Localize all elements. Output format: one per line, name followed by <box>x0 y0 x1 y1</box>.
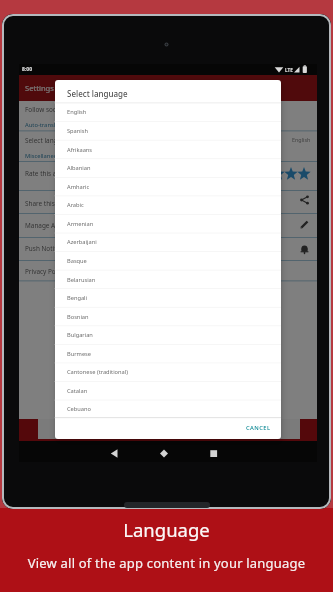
staticText: Afrikaans <box>67 146 93 154</box>
staticText: English <box>292 136 311 143</box>
staticText: Language <box>0 517 333 542</box>
staticText: Push Notifications <box>25 244 80 253</box>
staticText: Share this app <box>25 199 68 208</box>
staticText: Bosnian <box>67 313 89 321</box>
staticText: Cebuano <box>67 405 91 413</box>
staticText: CANCEL <box>246 424 271 432</box>
staticText: View all of the app content in your lang… <box>0 554 333 572</box>
staticText: Bulgarian <box>67 331 93 339</box>
staticText: Burmese <box>67 350 92 358</box>
staticText: 8:00 <box>22 66 32 73</box>
staticText: Amharic <box>67 183 90 191</box>
staticText: Spanish <box>67 127 89 135</box>
staticText: LTE <box>285 67 293 73</box>
staticText: Settings <box>25 83 54 93</box>
staticText: Armenian <box>67 220 94 228</box>
staticText: Cantonese (traditional) <box>67 368 128 376</box>
staticText: Albanian <box>67 164 91 172</box>
staticText: Select language <box>25 136 73 145</box>
staticText: Arabic <box>67 201 84 209</box>
staticText: Catalan <box>67 387 88 395</box>
staticText: Rate this app <box>25 169 65 178</box>
staticText: Bengali <box>67 294 88 302</box>
staticText: Privacy Policy <box>25 267 66 276</box>
staticText: English <box>67 108 87 116</box>
staticText: Manage Ad Consent <box>25 221 86 230</box>
staticText: Miscellaneous <box>25 152 64 160</box>
staticText: Auto-translate <box>25 121 64 129</box>
staticText: Belarusian <box>67 276 96 284</box>
staticText: Follow social media <box>25 105 84 114</box>
staticText: Select language <box>67 88 128 99</box>
staticText: Azerbaijani <box>67 238 97 246</box>
staticText: Basque <box>67 257 87 265</box>
